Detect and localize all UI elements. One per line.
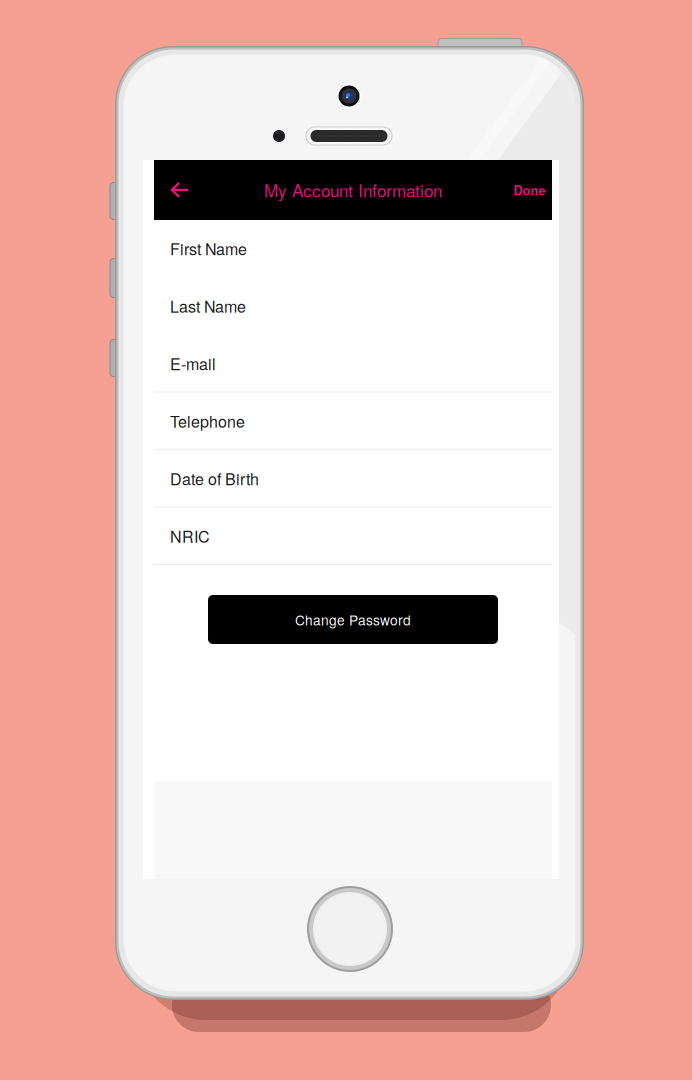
staticText: Change Password bbox=[295, 610, 411, 629]
button[interactable]: Home bbox=[306, 885, 394, 973]
staticText: Telephone bbox=[170, 409, 245, 432]
staticText: NRIC bbox=[170, 524, 210, 547]
button[interactable]: Last Name bbox=[154, 277, 552, 335]
button[interactable]: NRIC bbox=[154, 507, 552, 565]
staticText: Last Name bbox=[170, 294, 246, 317]
button[interactable]: Date of Birth bbox=[154, 450, 552, 507]
staticText: Done bbox=[513, 181, 545, 199]
staticText: My Account Information bbox=[264, 178, 442, 202]
button[interactable]: Back bbox=[154, 160, 206, 220]
button[interactable]: E-mail bbox=[154, 335, 552, 392]
button[interactable]: Done bbox=[507, 160, 552, 220]
button[interactable]: Telephone bbox=[154, 392, 552, 450]
button[interactable]: First Name bbox=[154, 220, 552, 277]
staticText: E-mail bbox=[170, 352, 216, 375]
staticText: Date of Birth bbox=[170, 467, 259, 490]
staticText: First Name bbox=[170, 237, 247, 260]
button[interactable]: Change Password bbox=[208, 595, 498, 644]
